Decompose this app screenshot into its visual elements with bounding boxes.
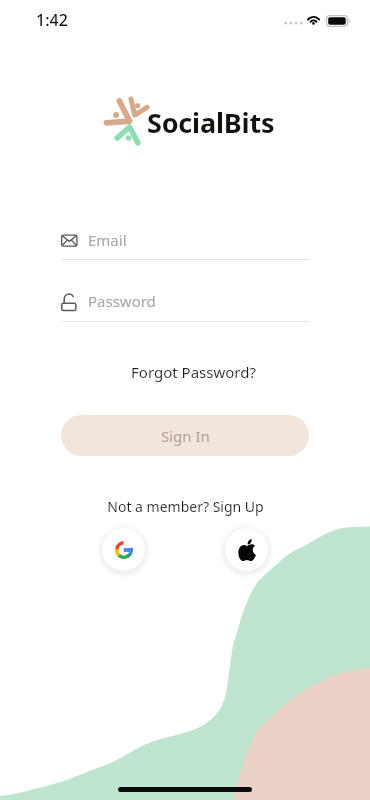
button[interactable]: Password: [61, 290, 309, 322]
button[interactable]: Not a member? Sign Up: [0, 496, 370, 516]
staticText: SocialBits: [147, 104, 275, 141]
staticText: 1:42: [36, 9, 68, 31]
button[interactable]: Sign in with Apple: [225, 528, 268, 571]
staticText: Password: [88, 291, 156, 311]
staticText: Email: [88, 230, 127, 250]
button[interactable]: Email: [61, 229, 309, 260]
staticText: Not a member? Sign Up: [107, 497, 264, 516]
staticText: Forgot Password?: [131, 362, 256, 382]
button[interactable]: Forgot Password?: [8, 360, 370, 384]
staticText: Sign In: [161, 426, 210, 446]
button[interactable]: Sign In: [61, 415, 309, 456]
button[interactable]: Sign in with Google: [102, 528, 145, 571]
